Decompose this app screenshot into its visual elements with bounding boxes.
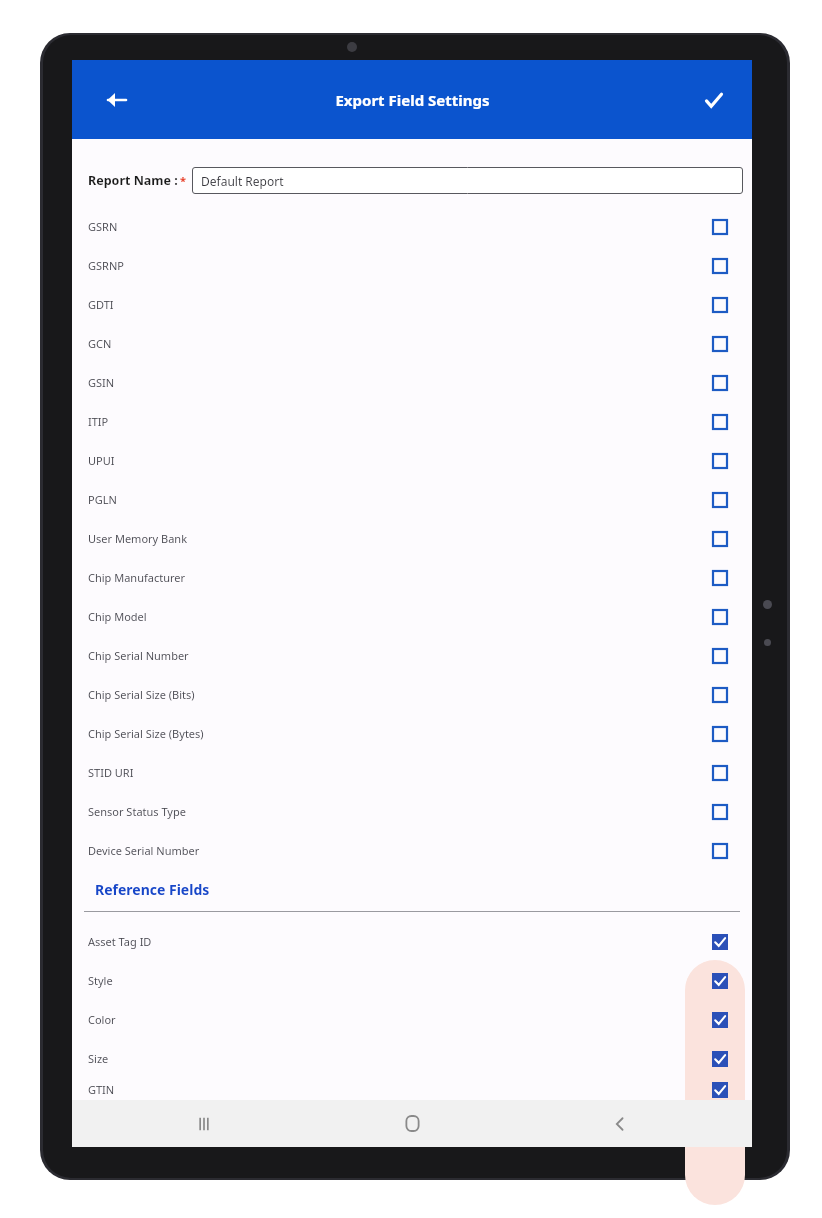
staticText: Chip Serial Number [88, 648, 189, 663]
button[interactable]: Back [92, 76, 140, 124]
staticText: Chip Manufacturer [88, 570, 186, 585]
button[interactable]: Home [308, 1100, 516, 1147]
staticText: GTIN [88, 1082, 115, 1097]
button[interactable]: User Memory Bank [72, 519, 752, 558]
button[interactable]: GCN [72, 324, 752, 363]
button[interactable]: Device Serial Number [72, 831, 752, 870]
button[interactable]: Save [691, 78, 735, 122]
button[interactable]: ITIP [72, 402, 752, 441]
staticText: GSRNP [88, 258, 124, 273]
staticText: User Memory Bank [88, 531, 188, 546]
staticText: Chip Serial Size (Bytes) [88, 726, 204, 741]
staticText: GCN [88, 336, 112, 351]
staticText: Default Report [201, 173, 284, 189]
staticText: * [180, 173, 186, 188]
staticText: Export Field Settings [335, 90, 490, 110]
button[interactable]: Asset Tag ID [72, 922, 752, 961]
button[interactable]: Back [516, 1100, 724, 1147]
button[interactable]: Chip Manufacturer [72, 558, 752, 597]
staticText: GSRN [88, 219, 118, 234]
button[interactable]: GSIN [72, 363, 752, 402]
button[interactable]: GSRNP [72, 246, 752, 285]
button[interactable]: GSRN [72, 207, 752, 246]
button[interactable]: Chip Serial Size (Bits) [72, 675, 752, 714]
button[interactable]: Sensor Status Type [72, 792, 752, 831]
button[interactable]: Style [72, 961, 752, 1000]
staticText: Chip Model [88, 609, 147, 624]
staticText: Size [88, 1051, 109, 1066]
button[interactable]: PGLN [72, 480, 752, 519]
staticText: UPUI [88, 453, 115, 468]
staticText: Report Name : [88, 172, 178, 189]
staticText: Device Serial Number [88, 843, 200, 858]
staticText: STID URI [88, 765, 134, 780]
button[interactable]: GTIN [72, 1078, 752, 1100]
staticText: PGLN [88, 492, 117, 507]
staticText: Color [88, 1012, 116, 1027]
staticText: Sensor Status Type [88, 804, 186, 819]
staticText: Style [88, 973, 113, 988]
button[interactable]: STID URI [72, 753, 752, 792]
button[interactable]: GDTI [72, 285, 752, 324]
staticText: Asset Tag ID [88, 934, 152, 949]
button[interactable]: UPUI [72, 441, 752, 480]
button[interactable]: Chip Serial Number [72, 636, 752, 675]
staticText: GSIN [88, 375, 115, 390]
button[interactable]: Chip Model [72, 597, 752, 636]
staticText: GDTI [88, 297, 114, 312]
button[interactable]: Color [72, 1000, 752, 1039]
button[interactable]: Default Report [192, 167, 743, 194]
button[interactable]: Chip Serial Size (Bytes) [72, 714, 752, 753]
staticText: ITIP [88, 414, 109, 429]
staticText: Reference Fields [95, 880, 210, 899]
button[interactable]: Recent apps [100, 1100, 308, 1147]
staticText: Chip Serial Size (Bits) [88, 687, 195, 702]
button[interactable]: Size [72, 1039, 752, 1078]
